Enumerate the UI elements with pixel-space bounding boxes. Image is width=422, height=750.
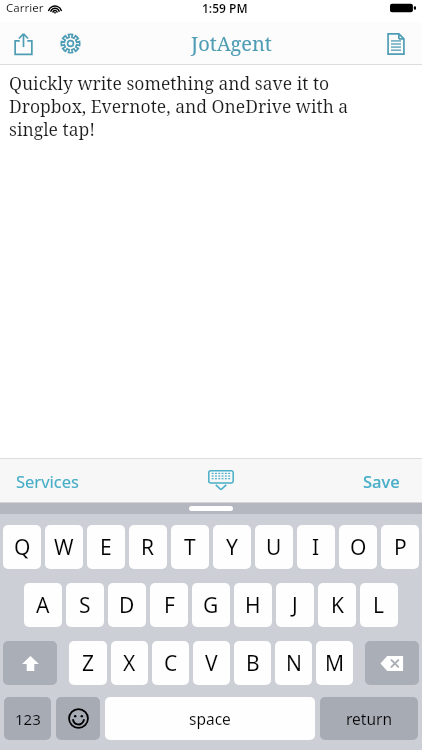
button[interactable]: Z bbox=[69, 641, 107, 685]
staticText: P bbox=[394, 533, 407, 562]
staticText: H bbox=[245, 591, 261, 620]
button[interactable]: O bbox=[339, 525, 377, 569]
staticText: Y bbox=[226, 533, 238, 562]
button[interactable]: Shift bbox=[3, 641, 57, 685]
staticText: O bbox=[350, 533, 367, 562]
button[interactable] bbox=[189, 506, 233, 511]
button[interactable]: Hide keyboard bbox=[199, 461, 243, 501]
button[interactable]: K bbox=[318, 583, 356, 627]
button[interactable]: J bbox=[276, 583, 314, 627]
staticText: X bbox=[123, 649, 136, 678]
staticText: return bbox=[346, 708, 392, 729]
button[interactable]: D bbox=[108, 583, 146, 627]
staticText: Save bbox=[363, 470, 400, 492]
staticText: Quickly write something and save it to D… bbox=[9, 71, 396, 141]
staticText: 123 bbox=[15, 709, 41, 729]
button[interactable]: return bbox=[320, 697, 418, 740]
button[interactable]: Delete bbox=[365, 641, 419, 685]
staticText: L bbox=[373, 591, 385, 620]
button[interactable]: N bbox=[275, 641, 312, 685]
button[interactable]: U bbox=[255, 525, 293, 569]
staticText: S bbox=[79, 591, 91, 620]
button[interactable]: Q bbox=[3, 525, 41, 569]
staticText: Z bbox=[82, 649, 95, 678]
button[interactable]: S bbox=[66, 583, 104, 627]
staticText: space bbox=[189, 708, 231, 729]
staticText: 1:59 PM bbox=[202, 0, 248, 16]
staticText: I bbox=[312, 533, 320, 562]
staticText: V bbox=[205, 649, 218, 678]
button[interactable]: X bbox=[111, 641, 148, 685]
staticText: K bbox=[331, 591, 344, 620]
button[interactable]: F bbox=[150, 583, 188, 627]
button[interactable]: L bbox=[360, 583, 398, 627]
staticText: T bbox=[184, 533, 196, 562]
staticText: Q bbox=[14, 533, 31, 562]
staticText: G bbox=[203, 591, 219, 620]
staticText: W bbox=[54, 533, 74, 562]
button[interactable]: P bbox=[381, 525, 419, 569]
button[interactable]: W bbox=[45, 525, 83, 569]
button[interactable]: Notes bbox=[370, 22, 422, 65]
staticText: A bbox=[36, 591, 50, 620]
button[interactable]: M bbox=[316, 641, 353, 685]
staticText: R bbox=[141, 533, 155, 562]
staticText: J bbox=[292, 591, 298, 620]
staticText: C bbox=[164, 649, 178, 678]
button[interactable]: I bbox=[297, 525, 335, 569]
staticText: F bbox=[164, 591, 175, 620]
staticText: U bbox=[266, 533, 282, 562]
button[interactable]: Y bbox=[213, 525, 251, 569]
button[interactable]: E bbox=[87, 525, 125, 569]
staticText: JotAgent bbox=[191, 30, 272, 57]
staticText: M bbox=[325, 649, 345, 678]
button[interactable]: space bbox=[105, 697, 315, 740]
button[interactable]: Settings bbox=[46, 22, 94, 65]
staticText: B bbox=[246, 649, 260, 678]
button[interactable]: Save bbox=[363, 470, 400, 492]
button[interactable]: C bbox=[152, 641, 189, 685]
staticText: N bbox=[286, 649, 302, 678]
button[interactable]: R bbox=[129, 525, 167, 569]
button[interactable]: V bbox=[193, 641, 230, 685]
button[interactable]: A bbox=[24, 583, 62, 627]
button[interactable]: 123 bbox=[4, 697, 51, 740]
button[interactable]: B bbox=[234, 641, 271, 685]
button[interactable]: Emoji bbox=[56, 697, 100, 740]
staticText: D bbox=[119, 591, 135, 620]
button[interactable]: Share bbox=[0, 22, 46, 65]
button[interactable]: T bbox=[171, 525, 209, 569]
button[interactable]: H bbox=[234, 583, 272, 627]
button[interactable]: G bbox=[192, 583, 230, 627]
staticText: Services bbox=[16, 470, 79, 492]
staticText: Carrier bbox=[6, 0, 44, 16]
button[interactable]: Services bbox=[16, 470, 79, 492]
staticText: E bbox=[100, 533, 112, 562]
